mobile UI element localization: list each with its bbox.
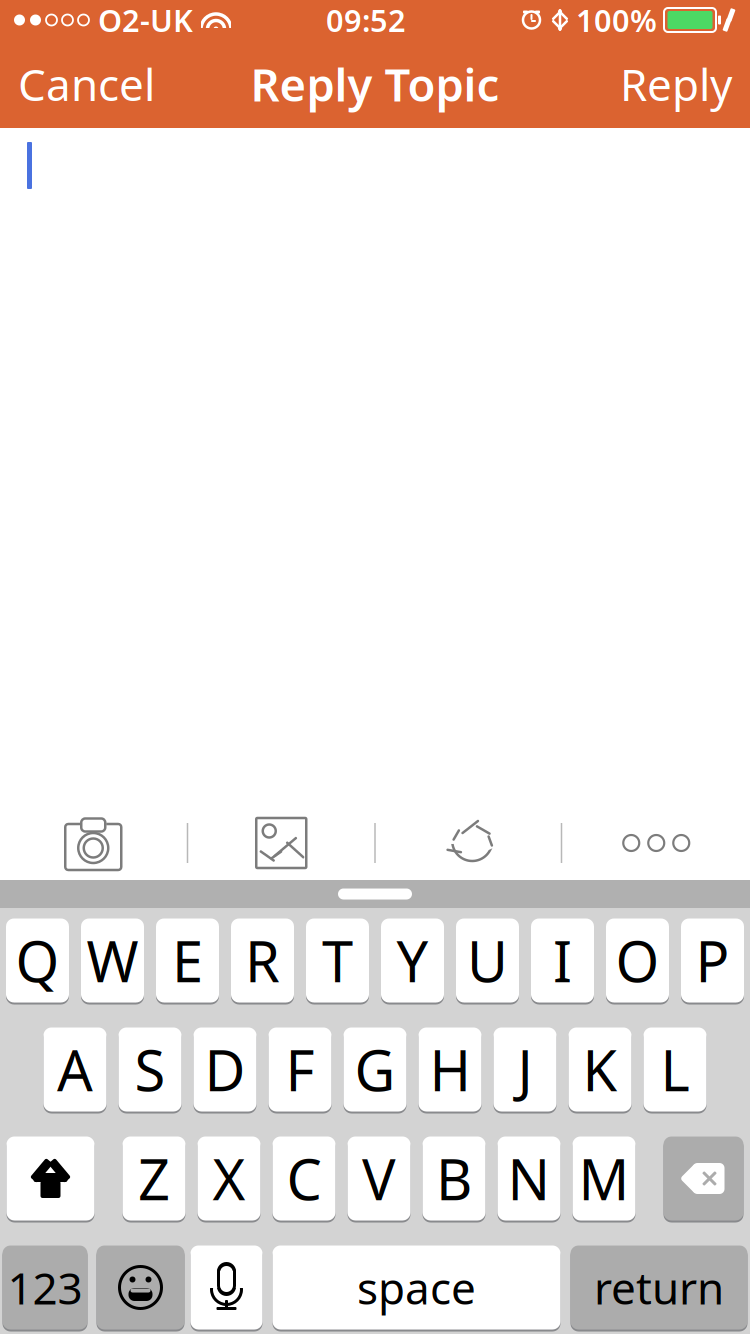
button[interactable]: Cancel [0, 40, 173, 128]
button[interactable]: T [306, 916, 369, 1004]
staticText: Reply Topic [250, 54, 499, 114]
staticText: L [660, 1032, 689, 1107]
staticText: E [172, 923, 203, 998]
staticText: S [134, 1032, 165, 1107]
button[interactable]: Photo Library [188, 806, 374, 880]
button[interactable]: More [562, 806, 750, 880]
button[interactable]: Reply [602, 40, 750, 128]
staticText: H [429, 1032, 470, 1107]
button[interactable]: A [43, 1025, 106, 1113]
staticText: V [362, 1141, 396, 1216]
staticText: W [86, 923, 138, 998]
staticText: R [245, 923, 280, 998]
staticText: Q [15, 923, 59, 998]
staticText: A [57, 1032, 93, 1107]
button[interactable]: H [418, 1025, 481, 1113]
staticText: I [553, 923, 572, 998]
button[interactable]: D [193, 1025, 256, 1113]
button[interactable]: Twitter [376, 806, 561, 880]
button[interactable]: Delete [663, 1134, 743, 1222]
button[interactable]: K [568, 1025, 631, 1113]
button[interactable]: G [343, 1025, 406, 1113]
staticText: X [212, 1141, 245, 1216]
staticText: G [354, 1032, 395, 1107]
button[interactable]: J [493, 1025, 556, 1113]
button[interactable]: F [268, 1025, 331, 1113]
staticText: T [322, 923, 353, 998]
button[interactable]: 123 [2, 1243, 87, 1331]
button[interactable]: Shift [6, 1134, 94, 1222]
button[interactable]: R [231, 916, 294, 1004]
staticText: B [436, 1141, 472, 1216]
button[interactable]: L [643, 1025, 706, 1113]
button[interactable]: B [422, 1134, 485, 1222]
staticText: P [695, 923, 729, 998]
staticText: U [467, 923, 508, 998]
staticText: Reply [620, 55, 732, 113]
staticText: 09:52 [326, 0, 406, 40]
button[interactable]: W [81, 916, 144, 1004]
staticText: O2-UK [98, 0, 193, 40]
button[interactable]: I [531, 916, 594, 1004]
button[interactable]: O [606, 916, 669, 1004]
button[interactable]: space [272, 1243, 560, 1331]
button[interactable]: V [347, 1134, 410, 1222]
staticText: F [285, 1032, 314, 1107]
button[interactable]: C [272, 1134, 335, 1222]
button[interactable]: Y [381, 916, 444, 1004]
button[interactable]: return [570, 1243, 747, 1331]
staticText: D [204, 1032, 245, 1107]
staticText: 123 [7, 1258, 82, 1317]
button[interactable]: Q [6, 916, 69, 1004]
button[interactable]: N [497, 1134, 560, 1222]
staticText: N [507, 1141, 550, 1216]
staticText: C [286, 1141, 321, 1216]
button[interactable]: Z [122, 1134, 185, 1222]
staticText: O [615, 923, 659, 998]
button[interactable]: E [156, 916, 219, 1004]
button[interactable]: Emoji [96, 1243, 184, 1331]
button[interactable]: M [572, 1134, 635, 1222]
button[interactable]: S [118, 1025, 181, 1113]
staticText: M [578, 1141, 629, 1216]
staticText: Z [138, 1141, 170, 1216]
button[interactable]: U [456, 916, 519, 1004]
button[interactable]: X [197, 1134, 260, 1222]
staticText: Y [396, 923, 428, 998]
button[interactable]: P [681, 916, 744, 1004]
staticText: space [357, 1258, 476, 1317]
staticText: Cancel [18, 55, 155, 113]
staticText: J [517, 1032, 532, 1107]
button[interactable]: Dictate [190, 1243, 262, 1331]
staticText: K [582, 1032, 617, 1107]
staticText: 100% [576, 0, 657, 40]
button[interactable]: Camera [0, 806, 187, 880]
staticText: return [594, 1258, 724, 1317]
